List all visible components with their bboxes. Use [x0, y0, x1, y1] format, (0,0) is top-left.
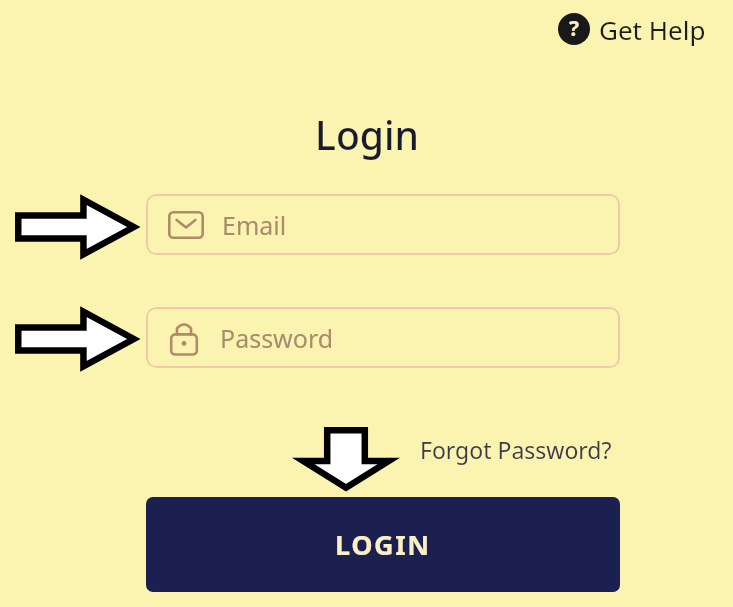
- button[interactable]: Password: [146, 307, 620, 368]
- button[interactable]: Help: [558, 9, 706, 49]
- button[interactable]: LOGIN: [146, 497, 620, 592]
- staticText: LOGIN: [335, 526, 431, 563]
- button[interactable]: Forgot Password?: [418, 432, 614, 467]
- staticText: Forgot Password?: [420, 434, 612, 465]
- staticText: ?: [569, 14, 580, 43]
- staticText: Password: [220, 321, 334, 355]
- staticText: Email: [222, 208, 287, 242]
- button[interactable]: Email: [146, 194, 620, 255]
- staticText: Get Help: [599, 12, 706, 47]
- other: Help: [558, 13, 590, 45]
- staticText: Login: [315, 108, 419, 161]
